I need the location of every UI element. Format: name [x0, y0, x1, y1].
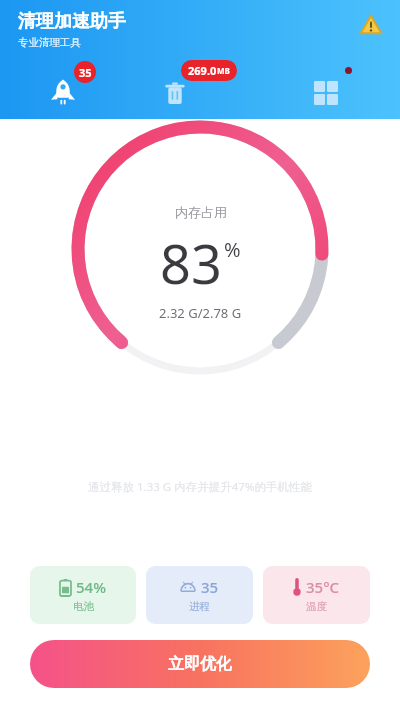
staticText: MB: [217, 65, 230, 76]
button[interactable]: Warning: [356, 10, 386, 40]
staticText: 269.0: [188, 63, 217, 78]
staticText: 温度: [306, 600, 327, 613]
staticText: 电池: [73, 600, 94, 613]
staticText: 立即优化: [168, 654, 232, 674]
button[interactable]: More tools: [312, 59, 356, 105]
button[interactable]: 54%: [30, 566, 136, 624]
staticText: 通过释放 1.33 G 内存并提升47%的手机性能: [24, 479, 376, 495]
staticText: 83: [160, 226, 222, 300]
staticText: 54%: [76, 577, 106, 597]
staticText: 清理加速助手: [18, 10, 126, 33]
staticText: 35: [201, 577, 219, 597]
button[interactable]: Boost apps: [44, 59, 106, 105]
button[interactable]: 35°C: [263, 566, 370, 624]
staticText: 专业清理工具: [18, 36, 81, 49]
staticText: 内存占用: [175, 204, 227, 220]
button[interactable]: Clean junk files: [161, 59, 257, 105]
button[interactable]: 立即优化: [30, 640, 370, 688]
staticText: 进程: [189, 600, 210, 613]
staticText: 2.32 G/2.78 G: [159, 304, 242, 322]
button[interactable]: 35: [146, 566, 253, 624]
staticText: 35°C: [306, 577, 340, 597]
staticText: %: [224, 236, 241, 263]
staticText: 35: [79, 65, 92, 80]
